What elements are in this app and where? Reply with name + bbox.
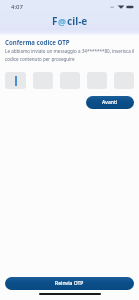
staticText: Le abbiamo inviato un messaggio a 34****… — [5, 48, 139, 63]
staticText: Reinvia OTP — [55, 280, 84, 287]
button[interactable] — [5, 72, 26, 89]
button[interactable]: Reinvia OTP — [5, 277, 134, 290]
staticText: Avanti — [102, 99, 118, 106]
staticText: Conferma codice OTP — [5, 38, 70, 46]
staticText: 4:07 — [11, 3, 23, 11]
button[interactable]: Avanti — [86, 96, 134, 109]
staticText: F — [52, 14, 58, 28]
staticText: cil-e — [67, 14, 88, 28]
staticText: @ — [58, 15, 67, 27]
